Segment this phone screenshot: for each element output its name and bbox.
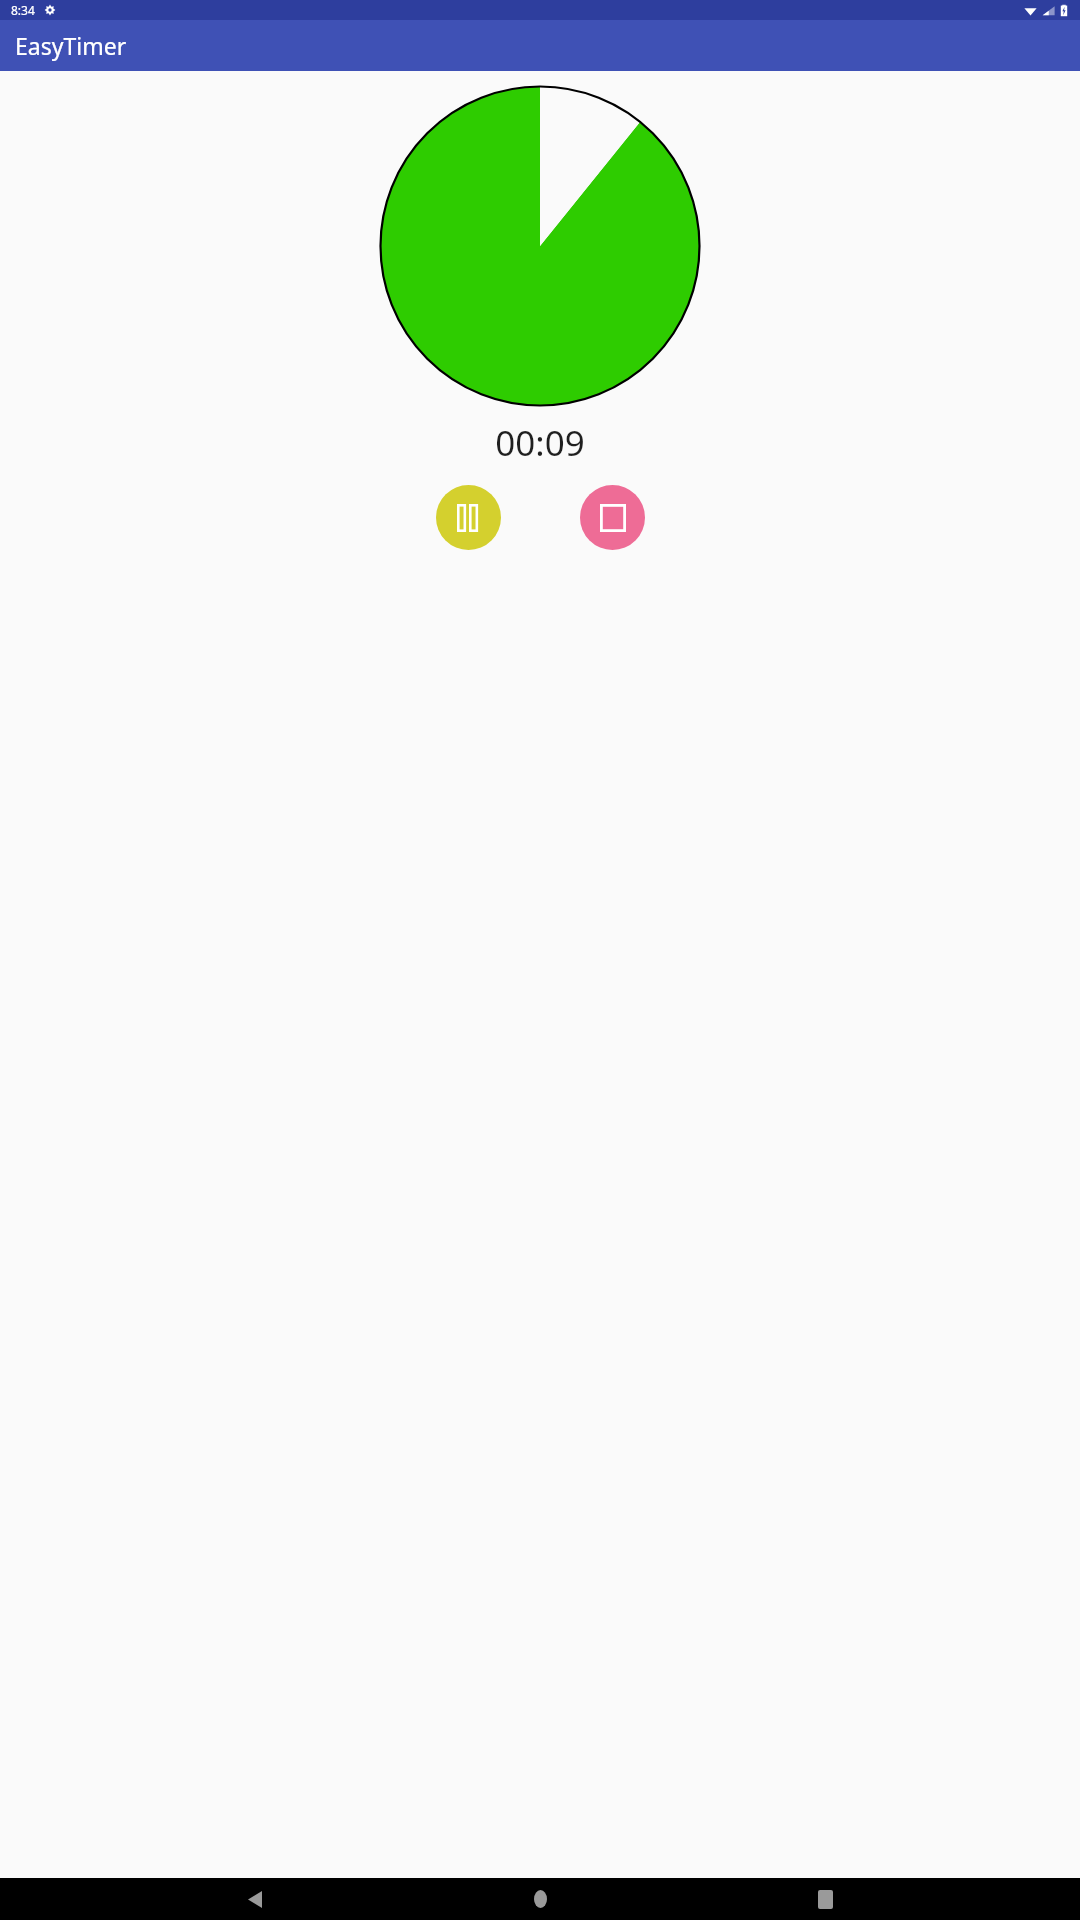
button[interactable]: Stop [580, 485, 645, 550]
button[interactable]: Pause [436, 485, 501, 550]
button[interactable]: Back [225, 1878, 285, 1920]
button[interactable]: Home [510, 1878, 570, 1920]
staticText: 8:34 [11, 2, 35, 18]
button[interactable]: Recent apps [795, 1878, 855, 1920]
staticText: EasyTimer [15, 30, 127, 61]
other: Settings [44, 4, 56, 16]
staticText: 00:09 [495, 419, 585, 467]
